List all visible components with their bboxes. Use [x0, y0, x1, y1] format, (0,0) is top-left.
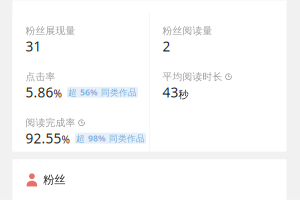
- staticText: 5.86%: [25, 83, 61, 101]
- button[interactable]: 粉丝: [12, 159, 286, 200]
- staticText: 92.55%: [25, 129, 69, 147]
- staticText: 粉丝展现量: [25, 25, 75, 37]
- staticText: 平均阅读时长: [162, 71, 222, 83]
- staticText: 粉丝: [43, 173, 65, 187]
- staticText: 2: [162, 37, 170, 55]
- staticText: 超 56% 同类作品: [68, 86, 137, 98]
- staticText: 超 98% 同类作品: [76, 132, 145, 144]
- staticText: 粉丝阅读量: [162, 25, 212, 37]
- staticText: 阅读完成率: [25, 117, 75, 129]
- staticText: 点击率: [25, 71, 55, 83]
- staticText: 43秒: [162, 83, 188, 101]
- staticText: 31: [25, 37, 41, 55]
